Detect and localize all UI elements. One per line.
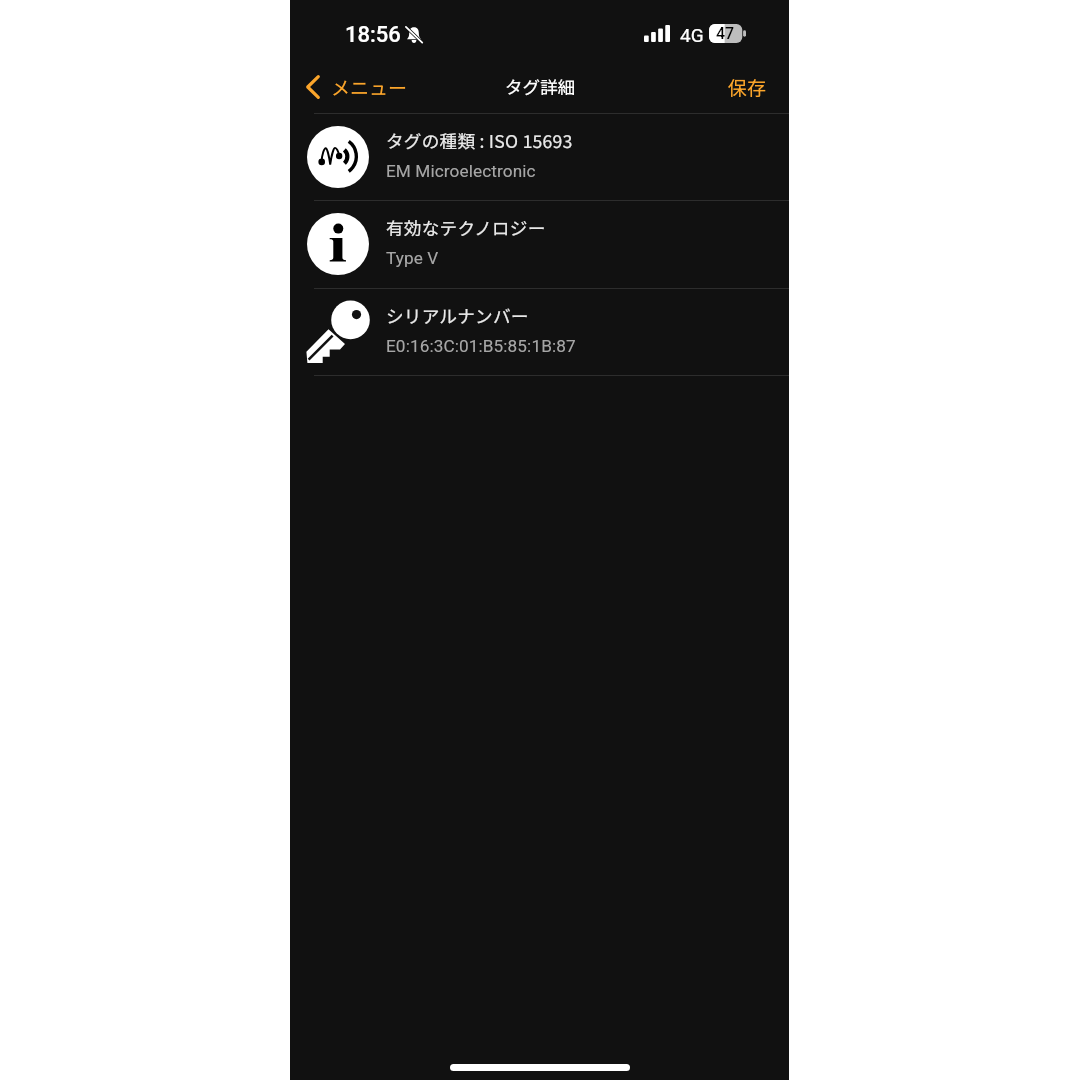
staticText: 保存 (728, 73, 767, 101)
staticText: シリアルナンバー (386, 303, 529, 328)
staticText: タグ詳細 (505, 74, 575, 99)
staticText: 有効なテクノロジー (386, 215, 546, 240)
staticText: メニュー (331, 73, 408, 101)
button[interactable]: 保存 (718, 67, 777, 107)
staticText: EM Microelectronic (386, 161, 536, 181)
staticText: Type V (386, 248, 439, 268)
button[interactable]: NFC tag type (290, 113, 789, 200)
button[interactable]: メニュー (299, 67, 418, 107)
staticText: E0:16:3C:01:B5:85:1B:87 (386, 336, 576, 356)
button[interactable]: Information (290, 200, 789, 287)
staticText: 18:56 (345, 22, 401, 48)
staticText: 47 (716, 24, 735, 43)
staticText: タグの種類 : ISO 15693 (386, 128, 573, 153)
staticText: 4G (680, 24, 704, 46)
button[interactable]: Serial number (290, 288, 789, 375)
